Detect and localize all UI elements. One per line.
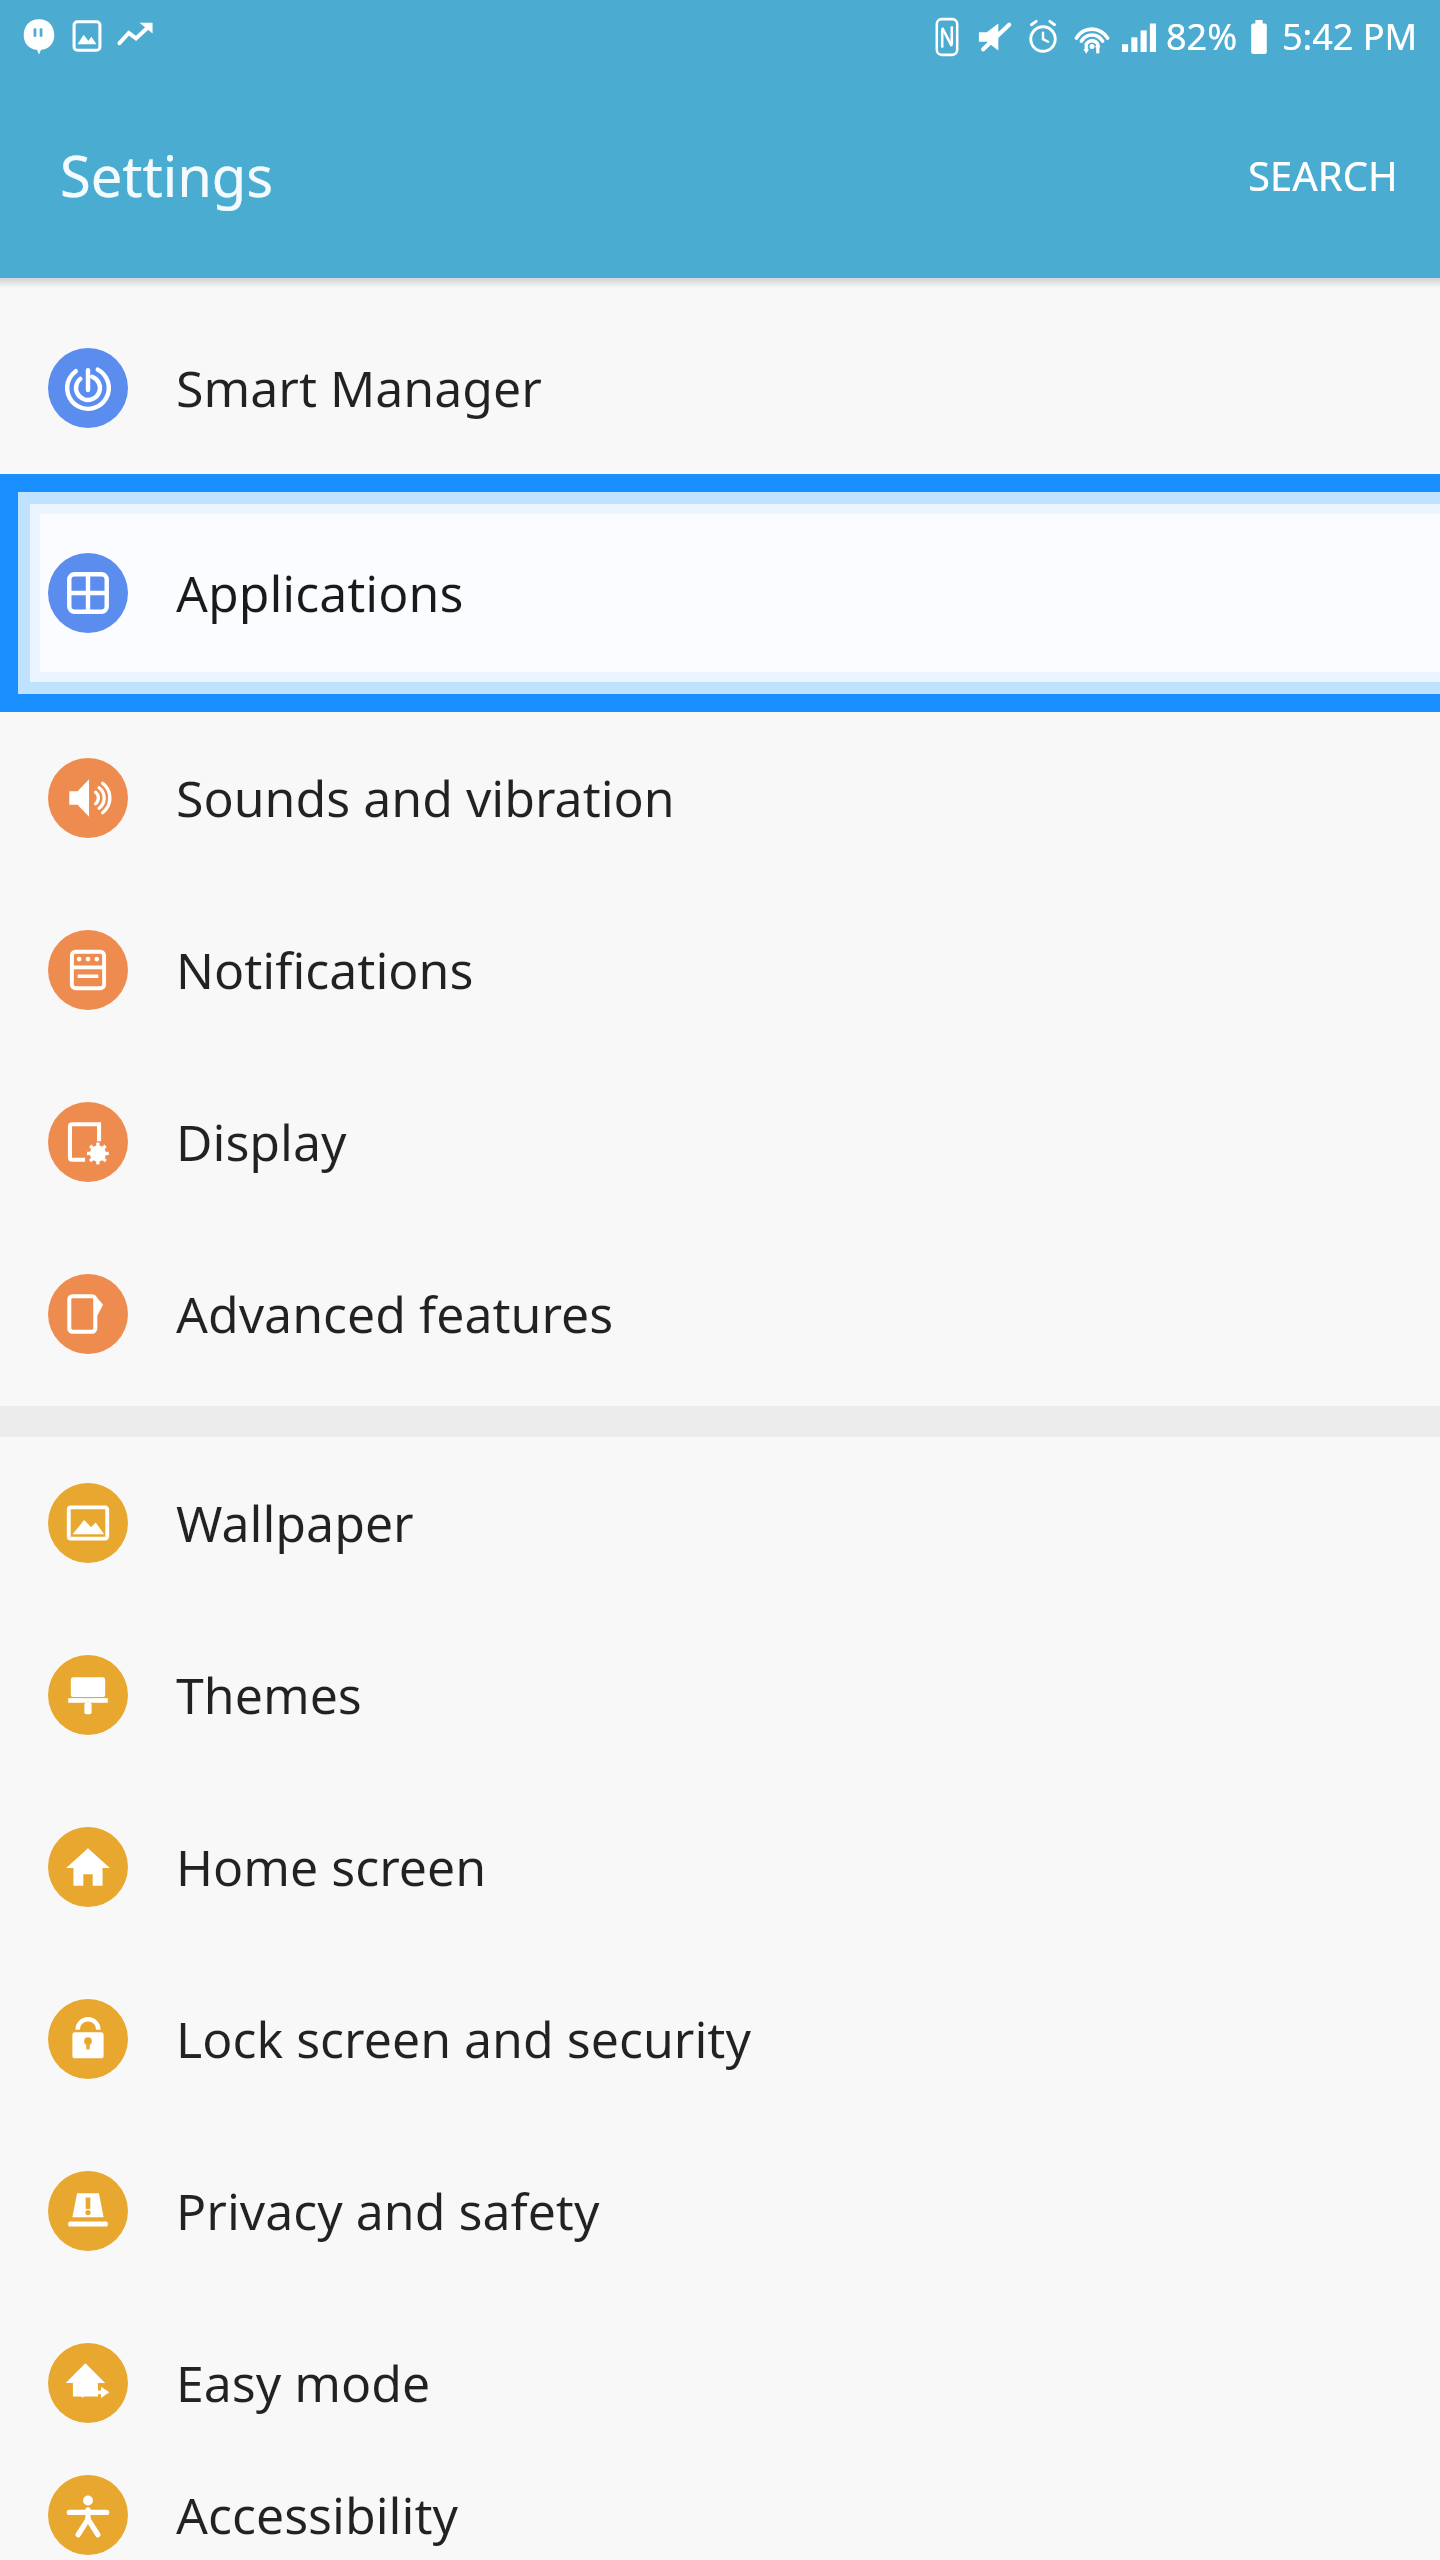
button[interactable]: Smart Manager	[0, 302, 1440, 474]
staticText: Display	[176, 1108, 347, 1176]
button[interactable]: Display	[0, 1056, 1440, 1228]
staticText: Lock screen and security	[176, 2005, 751, 2073]
button[interactable]: Lock screen and security	[0, 1953, 1440, 2125]
staticText: Advanced features	[176, 1280, 614, 1348]
button[interactable]: Wallpaper	[0, 1437, 1440, 1609]
button[interactable]: Privacy and safety	[0, 2125, 1440, 2297]
staticText: Accessibility	[176, 2481, 458, 2549]
button[interactable]: SEARCH	[1206, 112, 1440, 238]
staticText: Applications	[176, 559, 464, 627]
staticText: Smart Manager	[176, 354, 542, 422]
staticText: Easy mode	[176, 2349, 431, 2417]
button[interactable]: Themes	[0, 1609, 1440, 1781]
button[interactable]: Advanced features	[0, 1228, 1440, 1400]
staticText: Sounds and vibration	[176, 764, 675, 832]
button[interactable]: Easy mode	[0, 2297, 1440, 2469]
staticText: Privacy and safety	[176, 2177, 600, 2245]
button[interactable]: Accessibility	[0, 2469, 1440, 2560]
button[interactable]: Notifications	[0, 884, 1440, 1056]
button[interactable]: Home screen	[0, 1781, 1440, 1953]
staticText: SEARCH	[1248, 148, 1398, 202]
button[interactable]: Sounds and vibration	[0, 712, 1440, 884]
staticText: Themes	[176, 1661, 362, 1729]
staticText: Settings	[60, 137, 274, 213]
staticText: Notifications	[176, 936, 474, 1004]
staticText: 82%	[1166, 12, 1238, 61]
staticText: 5:42 PM	[1282, 12, 1418, 61]
button[interactable]: Applications	[0, 474, 1440, 712]
staticText: Wallpaper	[176, 1489, 414, 1557]
staticText: Home screen	[176, 1833, 487, 1901]
